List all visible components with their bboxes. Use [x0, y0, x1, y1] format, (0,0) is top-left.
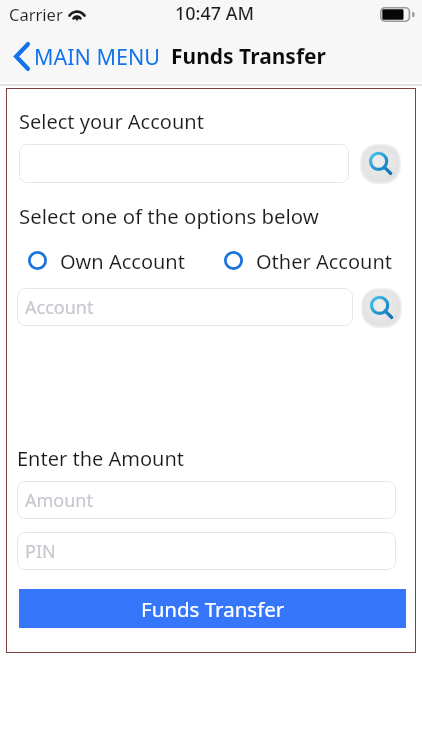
button[interactable]: Funds Transfer — [19, 589, 406, 628]
button[interactable]: MAIN MENU — [14, 34, 422, 79]
button[interactable]: Other Account — [223, 248, 392, 272]
staticText: 10:47 AM — [175, 1, 255, 26]
staticText: Amount — [25, 488, 93, 513]
button[interactable]: Account — [17, 288, 353, 326]
staticText: Select your Account — [19, 108, 204, 135]
button[interactable]: PIN — [17, 532, 396, 570]
staticText: Carrier — [9, 3, 63, 25]
staticText: MAIN MENU — [34, 42, 160, 71]
button[interactable]: Own Account — [27, 248, 185, 272]
staticText: Other Account — [256, 248, 392, 272]
staticText: Funds Transfer — [171, 42, 326, 71]
button[interactable]: Search — [361, 288, 402, 328]
staticText: Funds Transfer — [141, 595, 285, 623]
button[interactable] — [19, 144, 349, 183]
staticText: Select one of the options below — [19, 202, 319, 230]
staticText: Account — [25, 295, 94, 320]
staticText: Enter the Amount — [17, 445, 185, 472]
button[interactable]: Search — [360, 144, 401, 184]
button[interactable]: Amount — [17, 481, 396, 519]
staticText: Own Account — [60, 248, 185, 272]
staticText: PIN — [25, 539, 56, 564]
